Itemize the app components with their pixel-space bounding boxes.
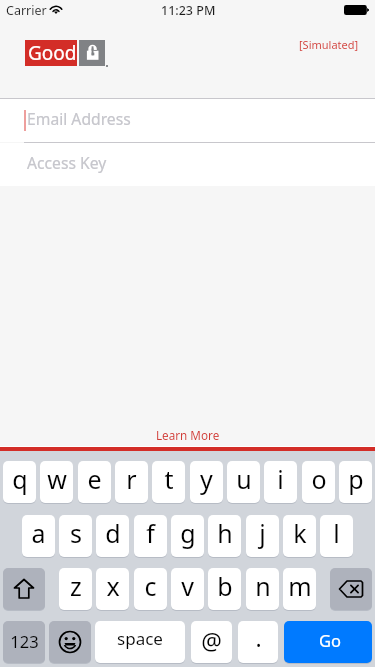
button[interactable]: y [190, 461, 223, 503]
button[interactable]: n [246, 568, 279, 610]
button[interactable]: i [264, 461, 297, 503]
staticText: space [117, 627, 163, 650]
staticText: h [217, 516, 233, 550]
staticText: t [164, 462, 174, 496]
staticText: [Simulated] [299, 37, 359, 52]
staticText: a [31, 516, 46, 550]
staticText: k [293, 516, 307, 550]
staticText: z [70, 569, 82, 603]
button[interactable]: s [59, 515, 92, 557]
staticText: f [146, 516, 155, 550]
staticText: p [348, 462, 364, 496]
staticText: 123 [10, 630, 39, 652]
button[interactable]: Emoji [49, 621, 91, 663]
button[interactable]: r [115, 461, 148, 503]
staticText: c [144, 569, 157, 603]
staticText: u [236, 462, 252, 496]
staticText: o [311, 462, 327, 496]
staticText: j [259, 516, 266, 550]
staticText: m [288, 569, 312, 603]
button[interactable]: q [3, 461, 36, 503]
button[interactable]: g [171, 515, 204, 557]
button[interactable]: 123 [3, 621, 45, 663]
button[interactable]: Shift [3, 568, 45, 610]
button[interactable]: . [238, 621, 278, 663]
staticText: Go [319, 629, 341, 651]
staticText: e [87, 462, 102, 496]
button[interactable]: @ [191, 621, 232, 663]
button[interactable]: v [171, 568, 204, 610]
button[interactable]: k [283, 515, 316, 557]
button[interactable]: d [96, 515, 129, 557]
button[interactable]: z [59, 568, 92, 610]
button[interactable]: w [40, 461, 73, 503]
staticText: 11:23 PM [161, 2, 216, 19]
staticText: s [70, 516, 82, 550]
staticText: Learn More [156, 427, 220, 443]
button[interactable]: m [283, 568, 316, 610]
staticText: g [180, 516, 196, 550]
button[interactable]: x [96, 568, 129, 610]
staticText: x [106, 569, 120, 603]
button[interactable]: space [95, 621, 185, 663]
button[interactable]: p [339, 461, 372, 503]
staticText: i [277, 462, 284, 496]
staticText: q [12, 462, 28, 496]
button[interactable]: h [208, 515, 241, 557]
button[interactable]: o [302, 461, 335, 503]
staticText: r [126, 462, 137, 496]
staticText: w [47, 462, 67, 496]
button[interactable]: Access Key [0, 143, 375, 186]
staticText: Email Address [27, 108, 131, 129]
staticText: @ [201, 625, 222, 656]
staticText: l [333, 516, 340, 550]
button[interactable]: Backspace [330, 568, 372, 610]
staticText: Carrier [6, 2, 47, 19]
button[interactable]: t [152, 461, 185, 503]
button[interactable]: Go [284, 621, 372, 663]
staticText: Good [28, 40, 77, 66]
button[interactable]: c [134, 568, 167, 610]
button[interactable]: b [208, 568, 241, 610]
button[interactable]: Email Address [0, 99, 375, 142]
button[interactable]: l [320, 515, 353, 557]
button[interactable]: a [22, 515, 55, 557]
button[interactable]: u [227, 461, 260, 503]
staticText: n [255, 569, 271, 603]
staticText: v [181, 569, 194, 603]
staticText: y [200, 462, 213, 496]
button[interactable]: Learn More [146, 424, 230, 446]
button[interactable]: e [78, 461, 111, 503]
staticText: . [255, 622, 262, 653]
button[interactable]: f [134, 515, 167, 557]
staticText: b [217, 569, 233, 603]
button[interactable]: j [246, 515, 279, 557]
staticText: d [105, 516, 121, 550]
staticText: Access Key [27, 152, 107, 173]
